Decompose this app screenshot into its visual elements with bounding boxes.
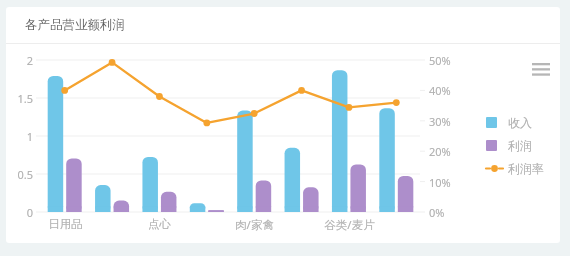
staticText: 10% xyxy=(429,175,451,190)
staticText: 谷类/麦片 xyxy=(324,217,375,233)
staticText: 30% xyxy=(429,114,451,129)
staticText: 利润 xyxy=(508,138,532,153)
staticText: 点心 xyxy=(148,217,171,231)
button[interactable]: 各产品营业额利润 xyxy=(6,7,560,43)
button[interactable]: Chart menu xyxy=(527,56,555,82)
button[interactable]: 收入 xyxy=(486,113,532,132)
staticText: 20% xyxy=(429,144,451,159)
staticText: 0% xyxy=(429,205,445,220)
staticText: 40% xyxy=(429,83,451,98)
staticText: 收入 xyxy=(508,115,532,130)
staticText: 1 xyxy=(26,129,33,144)
button[interactable]: 利润 xyxy=(486,136,532,155)
staticText: 各产品营业额利润 xyxy=(25,17,125,33)
staticText: 2 xyxy=(26,53,33,68)
staticText: 肉/家禽 xyxy=(235,217,274,233)
staticText: 利润率 xyxy=(508,161,544,176)
button[interactable]: 利润率 xyxy=(486,159,544,178)
staticText: 0 xyxy=(26,205,33,220)
staticText: 50% xyxy=(429,53,451,68)
staticText: 1.5 xyxy=(17,91,33,106)
staticText: 0.5 xyxy=(17,167,33,182)
staticText: 日用品 xyxy=(48,217,83,231)
